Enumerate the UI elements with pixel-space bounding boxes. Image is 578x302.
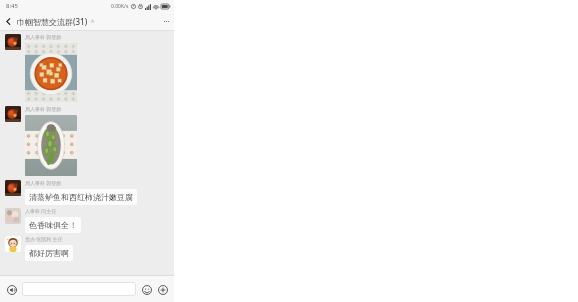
button[interactable]: Avatar — [5, 208, 21, 224]
staticText: 都好厉害啊 — [29, 248, 69, 258]
staticText: 局人事科 郭登旗 — [25, 34, 62, 41]
button[interactable] — [22, 282, 136, 296]
button[interactable]: Avatar — [5, 180, 21, 196]
button[interactable]: 都好厉害啊 — [25, 245, 73, 261]
button[interactable]: 清蒸鲈鱼和西红柿浇汁嫩豆腐 — [25, 189, 137, 205]
button[interactable]: Emoji — [140, 283, 153, 296]
button[interactable]: Avatar — [5, 236, 21, 252]
button[interactable]: Avatar — [5, 106, 21, 122]
staticText: 局人事科 郭登旗 — [25, 180, 62, 187]
button[interactable] — [25, 115, 77, 176]
staticText: 局人事科 郭登旗 — [25, 106, 62, 113]
button[interactable]: More functions — [156, 283, 169, 296]
button[interactable]: Avatar — [5, 180, 169, 205]
button[interactable]: Avatar — [5, 236, 169, 261]
button[interactable]: Avatar — [5, 208, 169, 233]
button[interactable]: More options — [158, 13, 174, 29]
button[interactable]: Back — [0, 13, 16, 29]
button[interactable]: 色香味俱全！ — [25, 217, 81, 233]
button[interactable]: Voice message — [5, 283, 18, 296]
staticText: 党办 张凯利 主任 — [25, 236, 63, 243]
staticText: 人事科 闫主任 — [25, 208, 57, 215]
staticText: 巾帼智慧交流群(31) — [17, 16, 88, 27]
staticText: 清蒸鲈鱼和西红柿浇汁嫩豆腐 — [29, 192, 133, 202]
button[interactable]: Avatar — [5, 106, 169, 176]
button[interactable]: Avatar — [5, 34, 169, 102]
button[interactable] — [25, 43, 77, 102]
staticText: 8:45 — [6, 2, 18, 10]
staticText: 0.00K/s — [111, 3, 129, 10]
staticText: 色香味俱全！ — [29, 220, 77, 230]
button[interactable]: Avatar — [5, 34, 21, 50]
